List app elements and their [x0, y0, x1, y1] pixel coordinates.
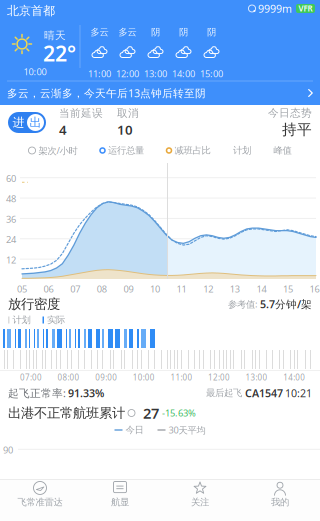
staticText: 计划	[12, 314, 30, 326]
staticText: 多云	[118, 26, 136, 38]
staticText: 15:00	[200, 67, 223, 80]
staticText: 进	[12, 115, 24, 130]
staticText: 08:00	[58, 372, 80, 383]
button[interactable]: 航显	[80, 480, 160, 510]
staticText: 放行密度	[8, 296, 60, 312]
staticText: 今日态势	[268, 106, 312, 119]
staticText: 多云	[90, 26, 108, 38]
staticText: 我的	[271, 496, 289, 508]
staticText: VFR	[298, 3, 312, 14]
staticText: 关注	[191, 496, 209, 508]
staticText: 11:00	[170, 372, 192, 383]
staticText: 13:00	[144, 67, 167, 80]
staticText: 13:00	[246, 372, 268, 383]
staticText: 27	[143, 403, 159, 423]
staticText: 9999m	[258, 1, 292, 16]
staticText: 峰值	[273, 145, 291, 156]
staticText: 91.33%	[68, 386, 104, 400]
staticText: 14:00	[172, 67, 195, 80]
staticText: 10	[150, 283, 160, 295]
staticText: 计划	[233, 145, 251, 156]
staticText: 10:00	[23, 65, 46, 78]
staticText: 阴	[207, 26, 216, 38]
staticText: 北京首都	[7, 3, 55, 18]
staticText: 4	[59, 121, 67, 138]
staticText: 运行总量	[108, 145, 144, 156]
staticText: 48	[6, 192, 16, 205]
staticText: 11	[177, 283, 187, 295]
button[interactable]: 关注	[160, 480, 240, 510]
staticText: 阴	[179, 26, 188, 38]
staticText: 12	[6, 254, 16, 266]
staticText: -15.63%	[162, 407, 196, 419]
staticText: 15	[283, 283, 293, 295]
staticText: 07	[70, 283, 80, 295]
staticText: 11:00	[88, 67, 111, 80]
staticText: 参考值:	[228, 298, 258, 310]
staticText: 实际	[47, 314, 65, 326]
button[interactable]: CA1547	[242, 386, 283, 400]
staticText: 22°	[43, 39, 76, 67]
staticText: CA1547	[245, 386, 283, 400]
staticText: 36	[6, 213, 16, 225]
staticText: 出港不正常航班累计	[8, 405, 125, 421]
button[interactable]: 我的	[240, 480, 320, 510]
staticText: 今日	[125, 424, 143, 436]
staticText: 阴	[151, 26, 160, 38]
staticText: 12:00	[116, 67, 139, 80]
staticText: 24	[6, 233, 16, 246]
staticText: 出	[29, 115, 41, 130]
staticText: 14	[256, 283, 266, 295]
staticText: 10:21	[285, 386, 312, 400]
staticText: 13	[230, 283, 240, 295]
button[interactable]: 多云，云渐多，今天午后13点钟后转至阴	[0, 81, 320, 105]
staticText: 架次/小时	[38, 144, 77, 157]
staticText: 12	[203, 283, 213, 295]
button[interactable]: 进	[8, 112, 46, 133]
staticText: 06	[44, 283, 54, 295]
staticText: 09:00	[95, 372, 117, 383]
staticText: 5.7分钟/架	[260, 297, 312, 311]
staticText: 飞常准雷达	[17, 496, 62, 508]
staticText: 最后起飞	[206, 387, 242, 399]
staticText: 60	[6, 172, 16, 185]
staticText: 12:00	[208, 372, 230, 383]
staticText: 减班占比	[174, 145, 210, 156]
staticText: 14:00	[283, 372, 305, 383]
staticText: 10	[117, 121, 133, 138]
staticText: 05	[17, 283, 27, 295]
staticText: 晴天	[44, 29, 66, 42]
staticText: 取消	[117, 107, 139, 120]
staticText: 当前延误	[59, 107, 103, 120]
staticText: 多云，云渐多，今天午后13点钟后转至阴	[7, 86, 206, 100]
staticText: 90	[3, 444, 13, 456]
staticText: 07:00	[20, 372, 42, 383]
staticText: 10:00	[133, 372, 155, 383]
staticText: 30天平均	[168, 424, 205, 436]
staticText: 08	[97, 283, 107, 295]
staticText: 16	[310, 283, 320, 295]
staticText: 航显	[111, 496, 129, 508]
button[interactable]: 飞常准雷达	[0, 480, 80, 510]
staticText: 持平	[282, 120, 312, 138]
staticText: 起飞正常率:	[8, 386, 66, 400]
staticText: 09	[123, 283, 133, 295]
